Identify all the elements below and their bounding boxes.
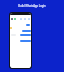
button[interactable] (22, 30, 31, 32)
button[interactable]: Video call (24, 18, 26, 20)
staticText: Build WhatsApp Login (0, 4, 64, 8)
button[interactable]: Search (20, 18, 22, 20)
button[interactable] (20, 34, 31, 36)
button[interactable] (26, 24, 30, 26)
button[interactable] (20, 40, 31, 42)
button[interactable]: Call (28, 18, 30, 20)
